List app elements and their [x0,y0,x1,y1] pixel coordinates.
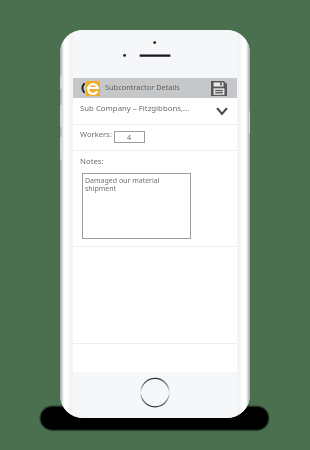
staticText: 4 [127,132,132,142]
button[interactable]: App logo [86,81,100,96]
staticText: Damaged our material shipment [85,176,191,193]
button[interactable]: Save [211,81,227,96]
staticText: Sub Company – Fitzgibbons,... [80,103,190,114]
staticText: Workers: [80,129,112,139]
staticText: Notes: [80,156,104,167]
button[interactable]: Sub Company – Fitzgibbons,... [73,98,237,124]
button[interactable]: Back [79,81,86,95]
button[interactable]: Damaged our material shipment [82,173,191,239]
button[interactable]: 4 [114,131,145,143]
staticText: Subcontractor Details [105,82,180,92]
